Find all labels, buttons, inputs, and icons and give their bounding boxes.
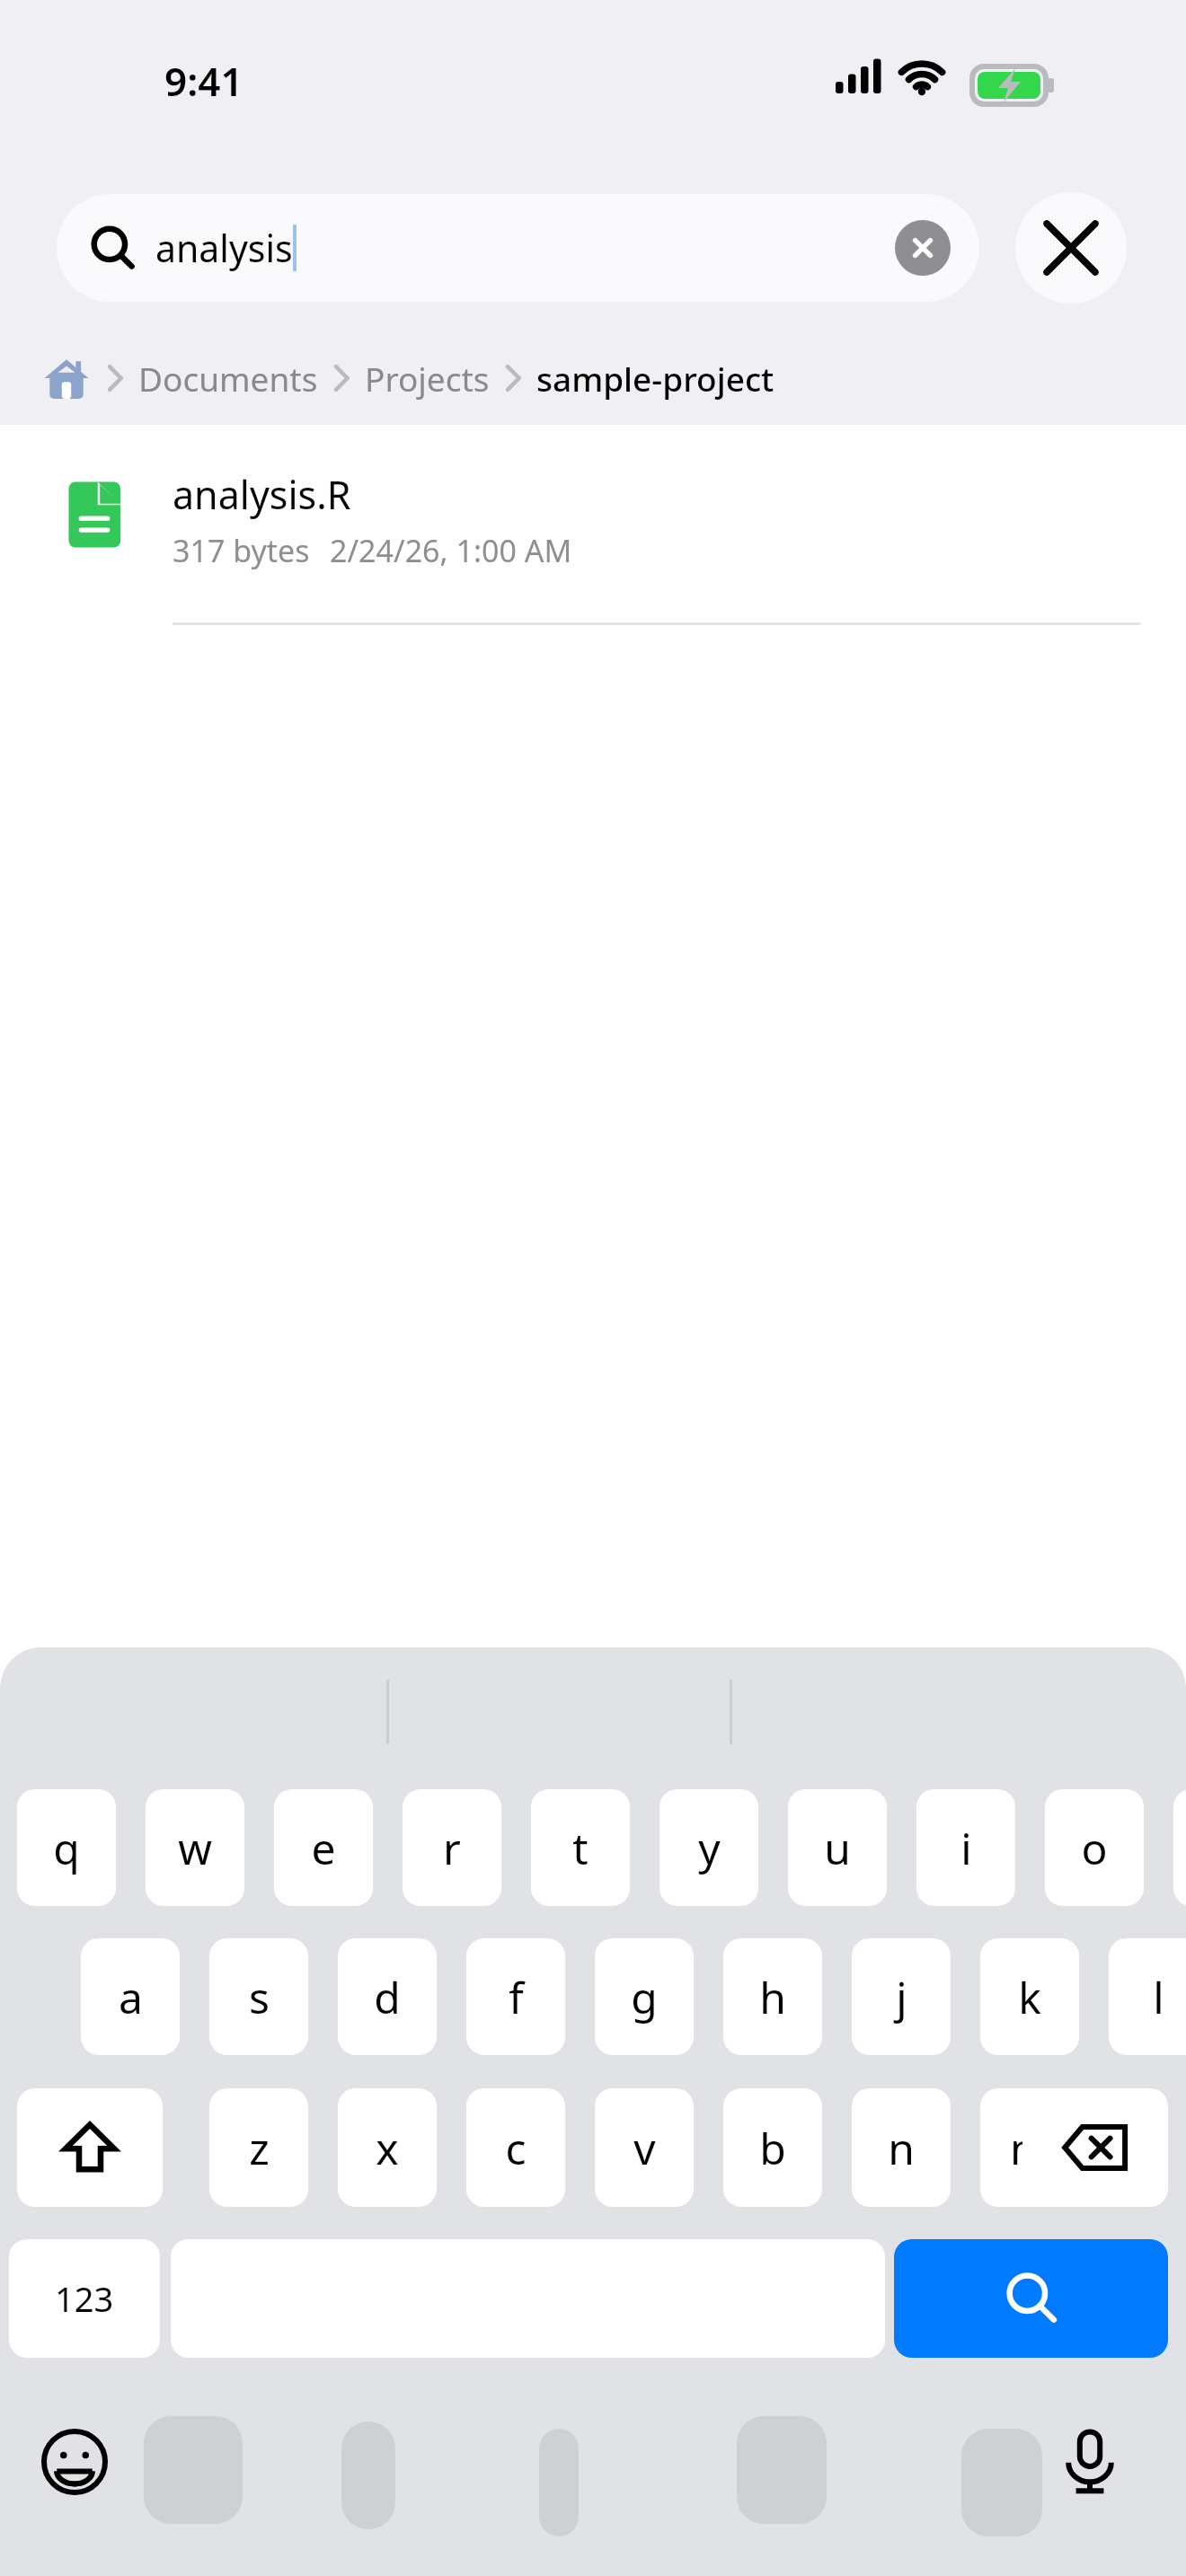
staticText: b <box>759 2119 786 2177</box>
button[interactable]: o <box>1045 1789 1144 1906</box>
staticText: f <box>509 1968 524 2026</box>
staticText: l <box>1153 1968 1164 2026</box>
button[interactable]: Projects <box>365 356 490 401</box>
staticText: r <box>443 1819 461 1877</box>
staticText: Projects <box>365 356 490 401</box>
staticText: a <box>119 1968 143 2026</box>
button[interactable]: analysis.R <box>0 425 1186 624</box>
button[interactable]: y <box>659 1789 758 1906</box>
staticText: y <box>698 1819 721 1877</box>
button[interactable]: n <box>852 2088 951 2207</box>
button[interactable]: h <box>723 1938 822 2055</box>
staticText: k <box>1018 1968 1041 2026</box>
staticText: s <box>249 1968 270 2026</box>
button[interactable]: analysis <box>57 194 979 302</box>
button[interactable]: s <box>209 1938 308 2055</box>
button[interactable]: f <box>466 1938 565 2055</box>
staticText: sample-project <box>536 356 774 401</box>
button[interactable]: Numbers <box>9 2239 160 2358</box>
button[interactable]: p <box>1173 1789 1186 1906</box>
button[interactable]: Documents <box>138 356 318 401</box>
staticText: 123 <box>55 2275 114 2322</box>
staticText: t <box>572 1819 589 1877</box>
staticText: 9:41 <box>164 54 243 104</box>
staticText: g <box>631 1968 658 2026</box>
button[interactable]: x <box>338 2088 437 2207</box>
button[interactable]: w <box>146 1789 244 1906</box>
button[interactable]: m <box>980 2088 1079 2207</box>
button[interactable]: Emoji <box>34 2422 115 2502</box>
staticText: x <box>376 2119 399 2177</box>
button[interactable]: k <box>980 1938 1079 2055</box>
staticText: 2/24/26, 1:00 AM <box>330 530 572 571</box>
button[interactable]: e <box>274 1789 373 1906</box>
staticText: n <box>888 2119 915 2177</box>
staticText: w <box>178 1819 212 1877</box>
button[interactable]: sample-project <box>536 356 774 401</box>
button[interactable]: l <box>1109 1938 1186 2055</box>
staticText: i <box>960 1819 972 1877</box>
staticText: o <box>1081 1819 1108 1877</box>
button[interactable]: Dictate <box>1049 2422 1130 2502</box>
staticText: d <box>374 1968 401 2026</box>
staticText: z <box>249 2119 270 2177</box>
staticText: Documents <box>138 356 318 401</box>
staticText: analysis <box>155 223 293 273</box>
button[interactable]: Search <box>894 2239 1168 2358</box>
staticText: e <box>311 1819 336 1877</box>
button[interactable]: Backspace <box>1022 2088 1168 2207</box>
staticText: q <box>53 1819 80 1877</box>
button[interactable]: t <box>531 1789 630 1906</box>
button[interactable]: z <box>209 2088 308 2207</box>
button[interactable]: v <box>595 2088 694 2207</box>
button[interactable]: c <box>466 2088 565 2207</box>
button[interactable]: d <box>338 1938 437 2055</box>
staticText: m <box>1010 2119 1050 2177</box>
button[interactable]: g <box>595 1938 694 2055</box>
button[interactable]: j <box>852 1938 951 2055</box>
button[interactable]: Shift <box>17 2088 163 2207</box>
staticText: u <box>824 1819 851 1877</box>
staticText: j <box>896 1968 907 2026</box>
button[interactable]: Clear text <box>895 220 951 276</box>
button[interactable]: u <box>788 1789 887 1906</box>
staticText: h <box>759 1968 786 2026</box>
button[interactable]: r <box>403 1789 501 1906</box>
staticText: c <box>505 2119 527 2177</box>
staticText: 317 bytes <box>173 530 310 571</box>
button[interactable]: q <box>17 1789 116 1906</box>
staticText: v <box>633 2119 656 2177</box>
button[interactable]: i <box>916 1789 1015 1906</box>
button[interactable]: b <box>723 2088 822 2207</box>
button[interactable]: a <box>81 1938 180 2055</box>
button[interactable]: Space <box>171 2239 885 2358</box>
staticText: analysis.R <box>173 468 351 521</box>
button[interactable]: Home <box>41 353 92 403</box>
button[interactable]: Close search <box>1015 192 1127 304</box>
